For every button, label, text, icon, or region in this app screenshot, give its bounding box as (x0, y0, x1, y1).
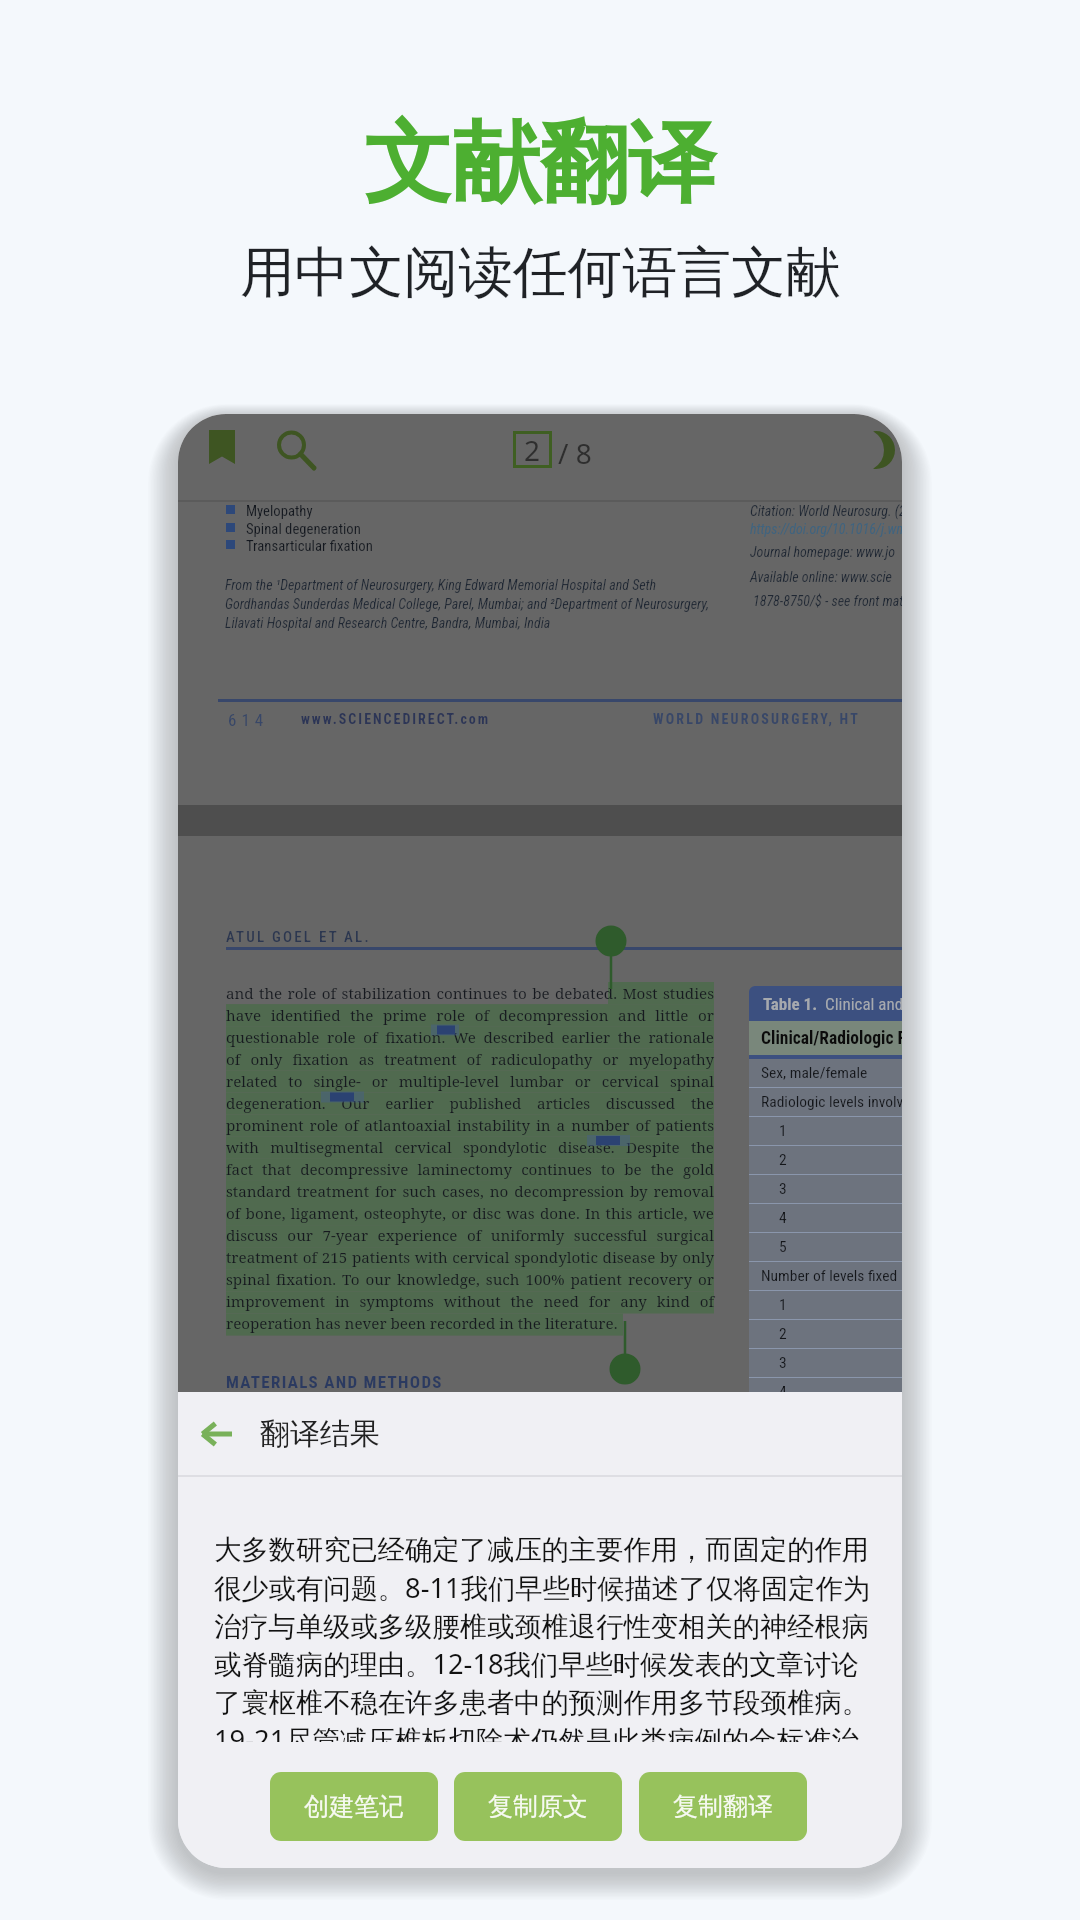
staticText: www.SCIENCEDIRECT.com (301, 711, 491, 727)
staticText: 4 (779, 1383, 787, 1392)
button[interactable]: 创建笔记 (270, 1772, 438, 1841)
staticText: 复制原文 (488, 1791, 588, 1822)
staticText: 2 (779, 1325, 787, 1343)
staticText: 1 (779, 1122, 787, 1140)
button[interactable]: Night mode (853, 427, 899, 473)
staticText: 2 (779, 1151, 787, 1169)
staticText: Clinical and (825, 994, 902, 1014)
button[interactable]: Bookmark (199, 424, 245, 470)
staticText: and the role of stabilization continues … (226, 983, 714, 1334)
staticText: Citation: World Neurosurg. (2 (750, 503, 902, 519)
other: Back (192, 1410, 240, 1458)
staticText: Sex, male/female (761, 1064, 868, 1082)
staticText: Available online: www.scie (750, 569, 892, 585)
staticText: From the ¹Department of Neurosurgery, Ki… (225, 577, 709, 631)
staticText: Transarticular fixation (246, 537, 373, 554)
button[interactable]: 复制翻译 (639, 1772, 807, 1841)
staticText: 4 (779, 1209, 787, 1227)
staticText: 2 (524, 431, 541, 468)
staticText: 创建笔记 (304, 1791, 404, 1822)
staticText: 用中文阅读任何语言文献 (240, 238, 841, 307)
staticText: WORLD NEUROSURGERY, HT (653, 711, 860, 727)
staticText: Radiologic levels involved (761, 1093, 902, 1111)
staticText: 1878-8750/$ - see front matt (753, 593, 902, 609)
staticText: Table 1. (763, 994, 818, 1014)
staticText: 复制翻译 (673, 1791, 773, 1822)
staticText: Number of levels fixed (761, 1267, 898, 1285)
button[interactable]: 复制原文 (454, 1772, 622, 1841)
staticText: Clinical/Radiologic Fea (761, 1028, 902, 1049)
staticText: / 8 (558, 434, 592, 472)
staticText: 5 (779, 1238, 787, 1256)
staticText: 翻译结果 (260, 1415, 380, 1453)
staticText: ATUL GOEL ET AL. (226, 928, 371, 946)
button[interactable]: Search (269, 424, 315, 470)
staticText: 1 (779, 1296, 787, 1314)
staticText: https://doi.org/10.1016/j.wne (750, 521, 902, 537)
staticText: 614 (228, 710, 269, 730)
staticText: Spinal degeneration (246, 520, 361, 537)
staticText: Myelopathy (246, 502, 313, 519)
button[interactable]: Back (178, 1392, 902, 1475)
staticText: 3 (779, 1180, 787, 1198)
staticText: 文献翻译 (364, 108, 716, 219)
staticText: 大多数研究已经确定了减压的主要作用，而固定的作用很少或有问题。8-11我们早些时… (214, 1533, 876, 1742)
staticText: 3 (779, 1354, 787, 1372)
staticText: MATERIALS AND METHODS (226, 1372, 443, 1392)
staticText: Journal homepage: www.jo (750, 544, 896, 560)
